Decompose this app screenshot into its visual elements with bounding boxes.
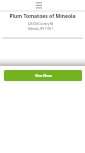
staticText: 226 Old Country Rd: [0, 22, 83, 26]
button[interactable]: View Menu: [4, 70, 82, 81]
staticText: Mineola, NY 11501: [0, 27, 83, 31]
staticText: Plum Tomatoes of Mineola: [0, 13, 85, 20]
staticText: View Menu: [35, 74, 52, 78]
button[interactable]: Open navigation menu: [34, 0, 43, 10]
